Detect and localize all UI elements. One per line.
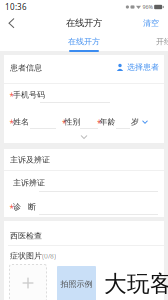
staticText: *	[9, 91, 13, 102]
button[interactable]: 选择年龄单位	[139, 116, 151, 128]
staticText: 年龄	[99, 117, 115, 127]
staticText: *	[62, 118, 66, 129]
staticText: 岁	[131, 117, 139, 127]
button[interactable]: 收起	[71, 131, 97, 143]
staticText: 断	[28, 202, 36, 212]
button[interactable]: 清空	[138, 14, 164, 32]
staticText: *	[9, 203, 13, 214]
staticText: 96%	[142, 3, 152, 11]
button[interactable]: 添加图片	[9, 264, 47, 300]
staticText: 开经方	[156, 37, 168, 46]
staticText: 选择患者	[127, 62, 159, 72]
staticText: 10:36	[5, 2, 27, 12]
staticText: 主诉及辨证	[10, 155, 50, 165]
staticText: 性别	[64, 117, 80, 127]
staticText: 姓名	[13, 117, 29, 127]
staticText: 手机号码	[13, 90, 45, 100]
staticText: 症状图片	[10, 251, 42, 261]
button[interactable]: 返回	[2, 14, 22, 32]
button[interactable]: 选择患者	[116, 60, 159, 74]
button[interactable]: 开经方	[126, 33, 168, 50]
button[interactable]: 在线开方	[42, 33, 126, 50]
staticText: 拍照示例	[60, 279, 92, 289]
staticText: 西医检查	[10, 231, 42, 241]
staticText: 患者信息	[10, 63, 42, 73]
staticText: 清空	[143, 18, 159, 28]
button[interactable]: 拍照示例	[57, 266, 96, 300]
staticText: 在线开方	[66, 17, 102, 29]
staticText: 大玩客	[104, 270, 168, 298]
staticText: (0/8)	[42, 251, 56, 260]
staticText: 在线开方	[68, 37, 100, 46]
staticText: 诊	[13, 202, 21, 212]
staticText: *	[9, 118, 13, 129]
staticText: *	[97, 118, 101, 129]
staticText: 主诉辨证	[13, 178, 45, 188]
